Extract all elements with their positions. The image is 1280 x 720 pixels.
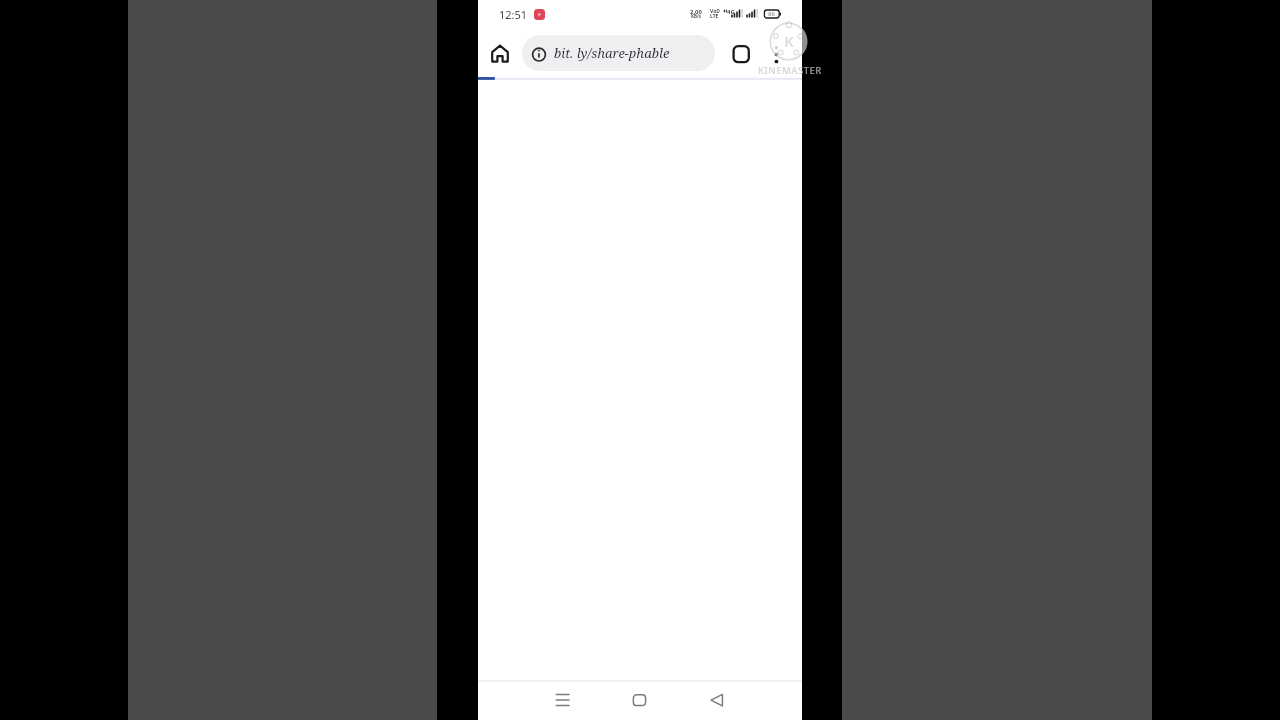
button[interactable] bbox=[769, 43, 784, 65]
staticText: LTE bbox=[710, 13, 719, 20]
button[interactable]: bit. ly/share-phable bbox=[522, 35, 715, 71]
staticText: K bbox=[781, 31, 797, 51]
staticText: 86 bbox=[768, 10, 775, 18]
staticText: bit. ly/share-phable bbox=[554, 44, 670, 62]
staticText: KB/s bbox=[691, 13, 702, 19]
staticText: 2.00 bbox=[690, 8, 702, 16]
staticText: KINEMASTER bbox=[758, 64, 822, 77]
button[interactable] bbox=[550, 688, 575, 712]
staticText: 4G bbox=[727, 8, 735, 16]
button[interactable] bbox=[627, 688, 652, 712]
button[interactable] bbox=[489, 43, 511, 65]
button[interactable] bbox=[705, 688, 730, 712]
staticText: 12:51 bbox=[499, 7, 528, 22]
staticText: VoD bbox=[710, 8, 720, 15]
button[interactable] bbox=[730, 43, 752, 65]
